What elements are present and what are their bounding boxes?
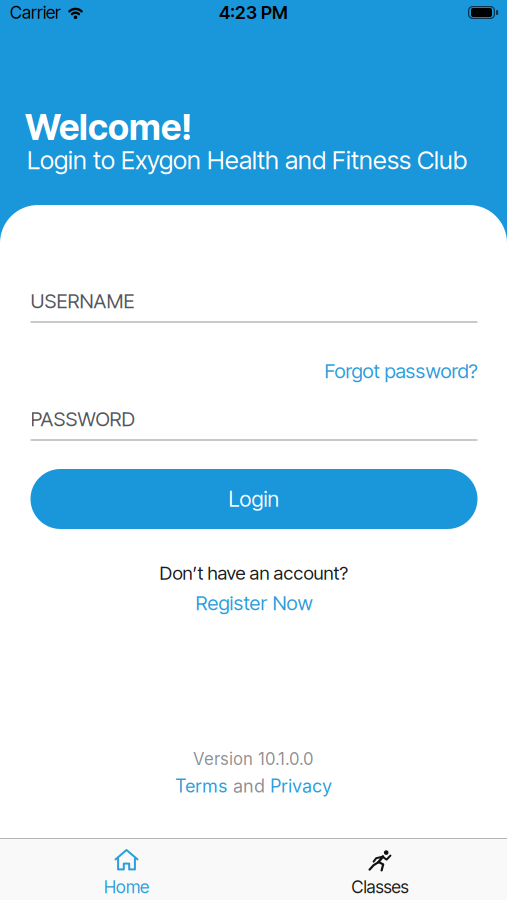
staticText: Version 10.1.0.0 bbox=[193, 749, 314, 769]
button[interactable]: Classes bbox=[253, 839, 507, 900]
staticText: PASSWORD bbox=[30, 407, 134, 431]
button[interactable]: Home bbox=[0, 839, 253, 900]
staticText: Terms bbox=[175, 775, 228, 797]
staticText: Welcome! bbox=[25, 105, 192, 149]
button[interactable]: Register Now bbox=[195, 591, 312, 615]
staticText: and bbox=[233, 775, 265, 797]
staticText: Forgot password? bbox=[324, 359, 477, 383]
staticText: Classes bbox=[351, 876, 408, 897]
staticText: Home bbox=[104, 876, 149, 897]
staticText: Privacy bbox=[270, 775, 332, 797]
staticText: 4:23 PM bbox=[219, 2, 288, 23]
staticText: Login bbox=[228, 486, 279, 512]
staticText: USERNAME bbox=[30, 289, 134, 313]
button[interactable]: Forgot password? bbox=[324, 359, 477, 383]
button[interactable]: Terms bbox=[175, 775, 228, 797]
staticText: Don’t have an account? bbox=[159, 562, 348, 584]
staticText: Register Now bbox=[195, 591, 312, 615]
staticText: Login to Exygon Health and Fitness Club bbox=[27, 145, 467, 175]
staticText: Carrier bbox=[10, 2, 61, 23]
button[interactable]: Login bbox=[30, 469, 477, 529]
button[interactable]: Privacy bbox=[270, 775, 332, 797]
